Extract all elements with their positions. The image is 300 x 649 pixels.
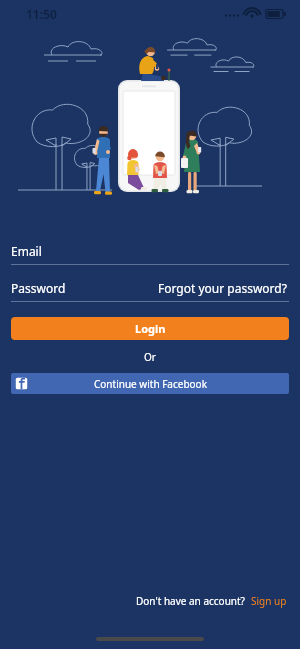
staticText: Password (11, 280, 66, 296)
button[interactable]: Email (11, 238, 289, 264)
button[interactable]: Sign up (250, 591, 288, 611)
button[interactable]: Continue with Facebook (11, 373, 289, 394)
button[interactable]: Forgot your password? (156, 276, 289, 300)
staticText: Login (135, 321, 166, 336)
staticText: Sign up (251, 594, 287, 608)
staticText: Don't have an account? (136, 594, 245, 608)
staticText: Forgot your password? (158, 280, 287, 296)
button[interactable]: Password (11, 275, 289, 301)
staticText: Or (144, 350, 156, 364)
staticText: Continue with Facebook (94, 377, 207, 391)
staticText: Email (11, 243, 42, 259)
button[interactable]: Login (11, 317, 289, 340)
staticText: 11:50 (26, 6, 57, 22)
